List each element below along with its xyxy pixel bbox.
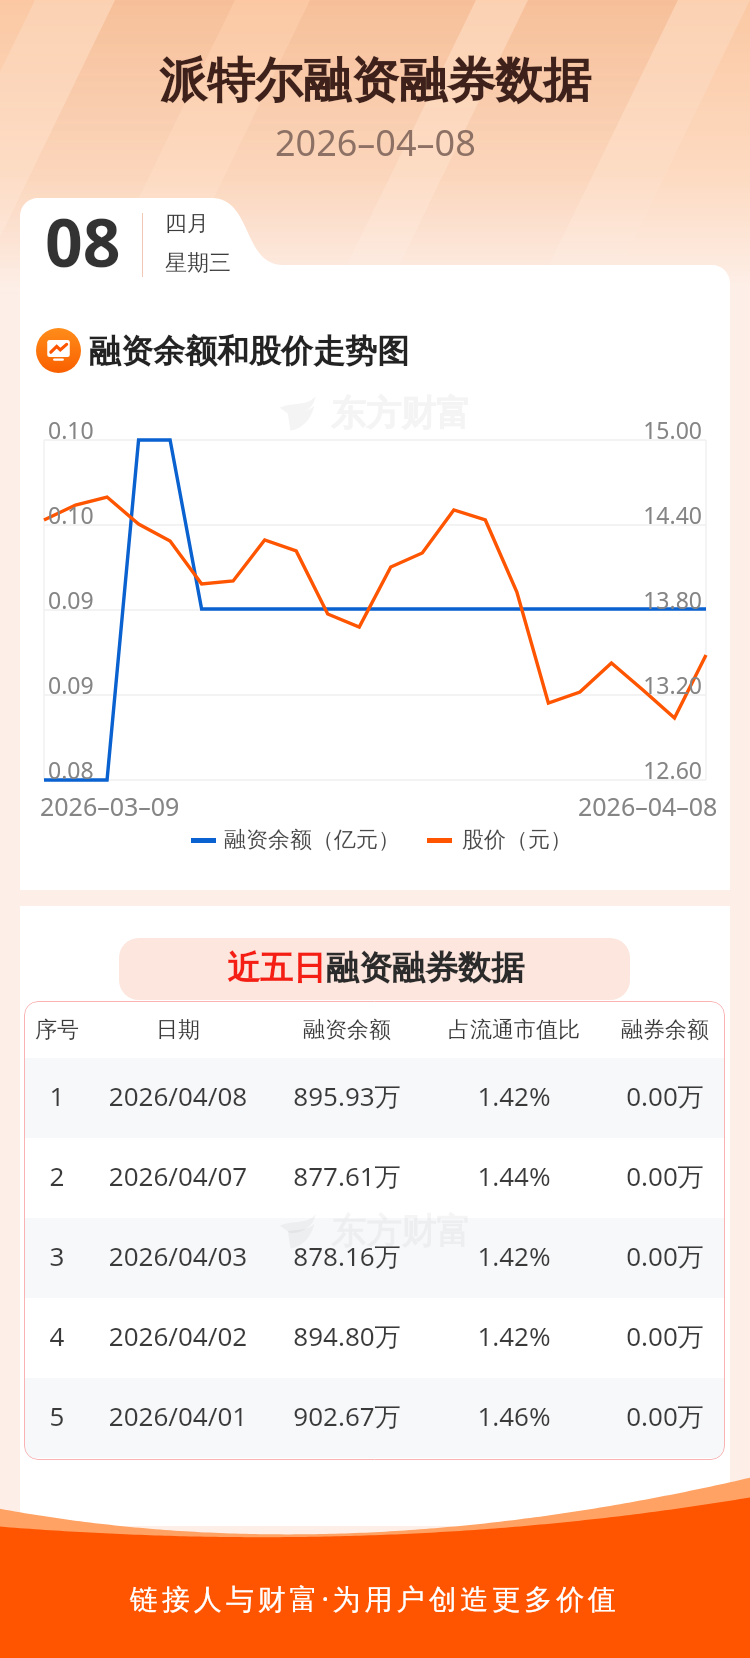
button[interactable]: 3 xyxy=(24,1218,725,1298)
button[interactable]: 1 xyxy=(24,1058,725,1138)
staticText: 08 xyxy=(45,196,121,286)
staticText: 融资余额 xyxy=(247,1016,447,1044)
staticText: 1.42% xyxy=(414,1078,614,1113)
staticText: 895.93万 xyxy=(247,1078,447,1114)
staticText: 1 xyxy=(24,1078,157,1113)
staticText: 1.42% xyxy=(414,1238,614,1273)
staticText: 派特尔融资融券数据 xyxy=(159,51,591,111)
staticText: 0.10 xyxy=(48,414,94,445)
staticText: 2026/04/01 xyxy=(78,1398,278,1433)
staticText: 902.67万 xyxy=(247,1398,447,1434)
staticText: 占流通市值比 xyxy=(414,1016,614,1044)
staticText: 近五日 xyxy=(227,947,326,989)
staticText: 0.00万 xyxy=(565,1318,725,1354)
staticText: 3 xyxy=(24,1238,157,1273)
staticText: 12.60 xyxy=(595,754,702,785)
button[interactable]: 5 xyxy=(24,1378,725,1458)
button[interactable]: 2 xyxy=(24,1138,725,1218)
staticText: 2026–03–09 xyxy=(40,789,180,823)
staticText: 股价（元） xyxy=(462,826,572,854)
staticText: 1.46% xyxy=(414,1398,614,1433)
staticText: 2026–04–08 xyxy=(275,118,476,167)
staticText: 14.40 xyxy=(595,499,702,530)
staticText: 1.44% xyxy=(414,1158,614,1193)
staticText: 东方财富 xyxy=(331,1209,471,1253)
button[interactable]: 走势图 xyxy=(36,328,409,373)
staticText: 15.00 xyxy=(595,414,702,445)
other: 走势图 xyxy=(36,328,81,373)
staticText: 东方财富 xyxy=(331,391,471,435)
staticText: 星期三 xyxy=(165,249,231,277)
button[interactable]: 08 xyxy=(45,196,231,286)
staticText: 融资余额和股价走势图 xyxy=(89,331,409,371)
staticText: 2026/04/03 xyxy=(78,1238,278,1273)
staticText: 0.09 xyxy=(48,669,94,700)
staticText: 2026/04/02 xyxy=(78,1318,278,1353)
staticText: 四月 xyxy=(165,210,209,238)
staticText: 894.80万 xyxy=(247,1318,447,1354)
staticText: 0.09 xyxy=(48,584,94,615)
staticText: 13.20 xyxy=(595,669,702,700)
staticText: 0.10 xyxy=(48,499,94,530)
staticText: 融券余额 xyxy=(565,1016,725,1044)
staticText: 877.61万 xyxy=(247,1158,447,1194)
staticText: 0.00万 xyxy=(565,1398,725,1434)
staticText: 2026–04–08 xyxy=(578,789,718,823)
staticText: 链接人与财富·为用户创造更多价值 xyxy=(130,1579,620,1617)
staticText: 2026/04/07 xyxy=(78,1158,278,1193)
staticText: 融资融券数据 xyxy=(326,947,524,989)
staticText: 4 xyxy=(24,1318,157,1353)
staticText: 0.00万 xyxy=(565,1078,725,1114)
button[interactable]: 4 xyxy=(24,1298,725,1378)
staticText: 融资余额（亿元） xyxy=(224,826,400,854)
staticText: 2 xyxy=(24,1158,157,1193)
button[interactable]: 融资余额（亿元） xyxy=(191,826,572,854)
staticText: 13.80 xyxy=(595,584,702,615)
staticText: 0.00万 xyxy=(565,1158,725,1194)
staticText: 0.08 xyxy=(48,754,94,785)
staticText: 5 xyxy=(24,1398,157,1433)
staticText: 2026/04/08 xyxy=(78,1078,278,1113)
staticText: 0.00万 xyxy=(565,1238,725,1274)
staticText: 878.16万 xyxy=(247,1238,447,1274)
staticText: 日期 xyxy=(78,1016,278,1044)
staticText: 1.42% xyxy=(414,1318,614,1353)
staticText: 序号 xyxy=(24,1016,157,1044)
